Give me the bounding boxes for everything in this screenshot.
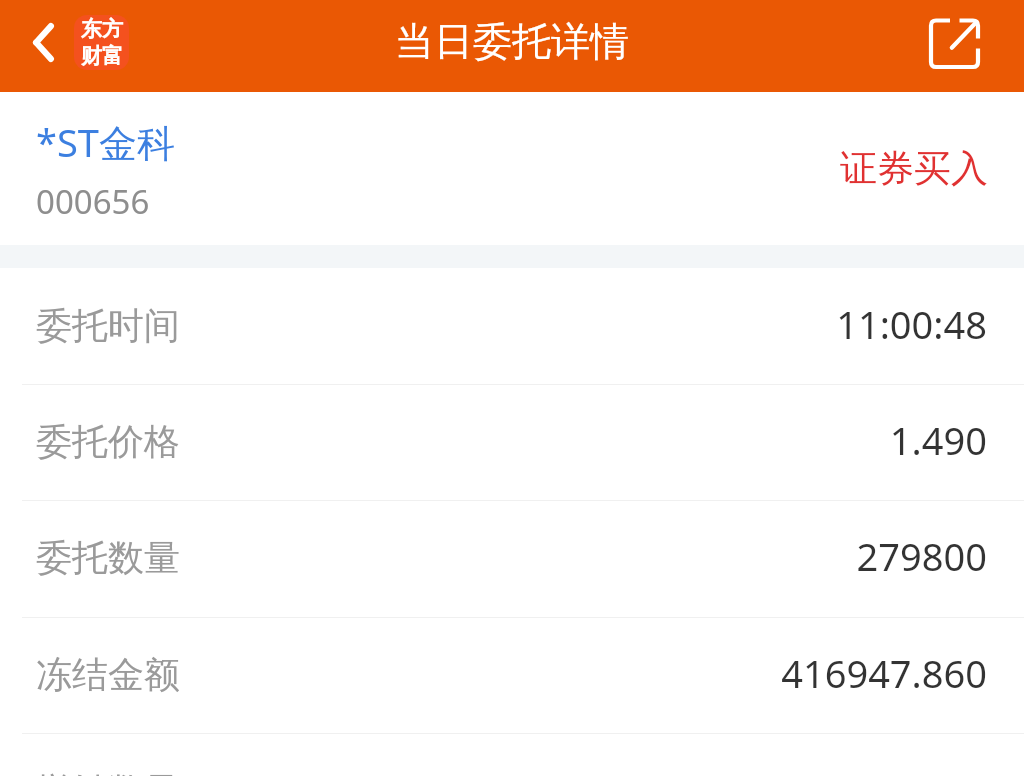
button[interactable]: 冻结金额 — [0, 618, 1024, 733]
button[interactable]: 委托价格 — [0, 385, 1024, 500]
button[interactable]: Share — [940, 4, 1024, 88]
staticText: 279800 — [524, 530, 987, 582]
staticText: 证券买入 — [840, 145, 988, 192]
staticText: 000656 — [36, 179, 150, 224]
staticText: *ST金科 — [36, 116, 175, 168]
staticText: 冻结金额 — [36, 652, 180, 697]
staticText: 东方 — [81, 16, 123, 42]
staticText: 11:00:48 — [524, 298, 987, 350]
button[interactable]: 委托数量 — [0, 501, 1024, 616]
staticText: 416947.860 — [524, 647, 987, 699]
staticText: 撤销数量 — [36, 768, 180, 776]
staticText: 当日委托详情 — [395, 17, 629, 66]
button[interactable]: *ST金科 — [0, 92, 1024, 245]
button[interactable]: Back — [0, 4, 84, 88]
staticText: 委托数量 — [36, 535, 180, 580]
staticText: 财富 — [81, 43, 123, 69]
staticText: 委托价格 — [36, 419, 180, 464]
staticText: 1.490 — [524, 414, 987, 466]
button[interactable]: 委托时间 — [0, 269, 1024, 384]
button[interactable]: 撤销数量 — [0, 734, 1024, 776]
staticText: 委托时间 — [36, 303, 180, 348]
